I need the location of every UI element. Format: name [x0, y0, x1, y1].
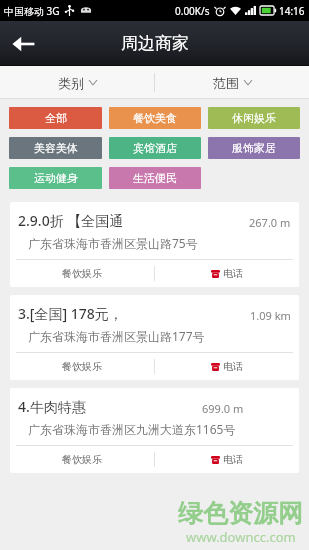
button[interactable]: 餐饮娱乐: [10, 446, 154, 473]
staticText: 广东省珠海市香洲区九洲大道东1165号: [28, 421, 236, 437]
staticText: 类别: [58, 75, 84, 91]
staticText: 服饰家居: [232, 141, 276, 155]
staticText: 广东省珠海市香洲区景山路75号: [28, 235, 198, 251]
staticText: www.downcc.com: [186, 528, 296, 546]
staticText: 267.0 m: [249, 215, 291, 230]
staticText: 699.0 m: [202, 401, 244, 416]
staticText: 4.牛肉特惠: [18, 397, 86, 416]
staticText: 周边商家: [121, 33, 189, 54]
staticText: 3.[全国] 178元，棒！约翰现金卡: [18, 304, 134, 323]
staticText: 广东省珠海市香洲区景山路177号: [28, 328, 205, 344]
button[interactable]: 宾馆酒店: [109, 137, 201, 159]
staticText: 休闲娱乐: [232, 111, 276, 125]
button[interactable]: 运动健身: [9, 167, 102, 189]
button[interactable]: 餐饮美食: [109, 107, 201, 129]
staticText: 餐饮美食: [133, 111, 177, 125]
staticText: 全部: [45, 111, 67, 125]
button[interactable]: 生活便民: [109, 167, 201, 189]
button[interactable]: 美容美体: [9, 137, 102, 159]
button[interactable]: 电话: [155, 353, 299, 380]
staticText: 宾馆酒店: [133, 141, 177, 155]
staticText: 餐饮娱乐: [62, 360, 102, 373]
staticText: 美容美体: [34, 141, 78, 155]
button[interactable]: 类别: [0, 66, 154, 99]
staticText: 餐饮娱乐: [62, 267, 102, 280]
staticText: 运动健身: [34, 171, 78, 185]
staticText: 1.09 km: [250, 308, 291, 323]
staticText: 生活便民: [133, 171, 177, 185]
button[interactable]: 电话: [155, 446, 299, 473]
button[interactable]: 2.9.0折 【全国通用】仅450元: [10, 202, 299, 287]
button[interactable]: 全部: [9, 107, 102, 129]
button[interactable]: 范围: [155, 66, 309, 99]
button[interactable]: 3.[全国] 178元，棒！约翰现金卡: [10, 295, 299, 380]
button[interactable]: Back: [0, 21, 46, 66]
staticText: 餐饮娱乐: [62, 453, 102, 466]
staticText: 电话: [223, 267, 243, 280]
staticText: 中国移动 3G: [4, 4, 60, 18]
staticText: 0.00K/s: [175, 4, 210, 18]
button[interactable]: 餐饮娱乐: [10, 260, 154, 287]
button[interactable]: 餐饮娱乐: [10, 353, 154, 380]
staticText: 电话: [223, 360, 243, 373]
button[interactable]: 电话: [155, 260, 299, 287]
staticText: 14:16: [279, 4, 305, 18]
staticText: 范围: [213, 75, 239, 91]
staticText: 绿色资源网: [178, 498, 303, 529]
button[interactable]: 服饰家居: [208, 137, 300, 159]
staticText: 电话: [223, 453, 243, 466]
staticText: 2.9.0折 【全国通用】仅450元: [18, 211, 133, 230]
button[interactable]: 休闲娱乐: [208, 107, 300, 129]
button[interactable]: 4.牛肉特惠: [10, 388, 299, 473]
